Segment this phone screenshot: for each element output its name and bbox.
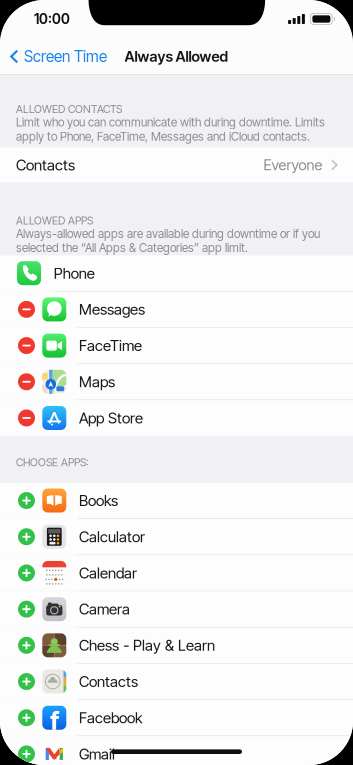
button[interactable]: Maps xyxy=(0,364,353,399)
button[interactable]: Chess - Play & Learn xyxy=(0,628,353,663)
staticText: Phone xyxy=(54,264,95,282)
button[interactable]: Screen Time xyxy=(0,41,107,72)
button[interactable]: Calculator xyxy=(0,519,353,554)
staticText: 10:00 xyxy=(34,11,70,27)
staticText: Always Allowed xyxy=(124,48,228,65)
staticText: Calculator xyxy=(79,528,145,546)
staticText: CHOOSE APPS: xyxy=(16,456,89,469)
staticText: ALLOWED APPS xyxy=(16,214,93,227)
staticText: App Store xyxy=(79,409,143,427)
staticText: Chess - Play & Learn xyxy=(79,636,215,654)
staticText: FaceTime xyxy=(79,336,142,355)
button[interactable]: Books xyxy=(0,483,353,518)
staticText: Maps xyxy=(79,373,115,391)
button[interactable]: Contacts xyxy=(0,664,353,699)
staticText: ALLOWED CONTACTS xyxy=(16,102,122,116)
staticText: Limit who you can communicate with durin… xyxy=(16,115,325,129)
staticText: Camera xyxy=(79,600,130,618)
staticText: Gmail xyxy=(79,745,115,763)
button[interactable]: FaceTime xyxy=(0,328,353,363)
button[interactable]: Messages xyxy=(0,292,353,327)
staticText: Facebook xyxy=(79,709,142,727)
button[interactable]: Camera xyxy=(0,591,353,627)
button[interactable]: Contacts xyxy=(0,147,353,182)
staticText: Everyone xyxy=(263,156,322,174)
staticText: Messages xyxy=(79,300,145,318)
button[interactable]: f xyxy=(0,700,353,735)
button[interactable]: Gmail xyxy=(0,736,353,765)
staticText: Contacts xyxy=(79,672,138,691)
button[interactable]: Calendar xyxy=(0,555,353,591)
staticText: Screen Time xyxy=(24,47,107,66)
staticText: selected the “All Apps & Categories” app… xyxy=(16,241,248,255)
staticText: apply to Phone, FaceTime, Messages and i… xyxy=(16,129,310,143)
button[interactable]: Phone xyxy=(0,255,353,291)
button[interactable]: App Store xyxy=(0,400,353,436)
staticText: Books xyxy=(79,491,118,510)
staticText: Calendar xyxy=(79,564,137,582)
staticText: f xyxy=(50,705,59,736)
staticText: Contacts xyxy=(16,156,75,174)
staticText: Always-allowed apps are available during… xyxy=(16,226,320,241)
